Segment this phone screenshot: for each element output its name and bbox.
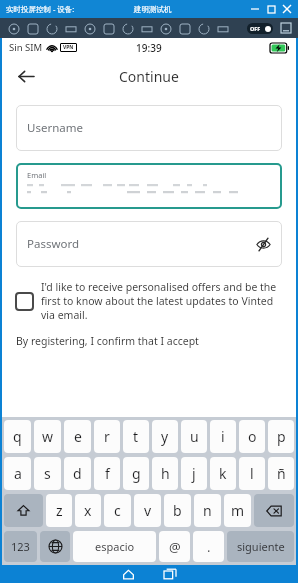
button[interactable]: Username: [16, 105, 282, 151]
button[interactable]: Tool 7: [118, 19, 137, 38]
button[interactable]: Tool 3: [42, 19, 61, 38]
button[interactable]: Minimize: [247, 1, 263, 17]
staticText: y: [161, 427, 169, 446]
button[interactable]: c: [104, 494, 131, 527]
staticText: v: [144, 501, 152, 520]
button[interactable]: v: [134, 494, 161, 527]
button[interactable]: Back: [8, 59, 42, 93]
button[interactable]: o: [239, 420, 265, 453]
button[interactable]: Tool 8: [137, 19, 156, 38]
button[interactable]: b: [164, 494, 191, 527]
button[interactable]: a: [4, 457, 31, 490]
staticText: 建明测试机: [134, 5, 172, 14]
button[interactable]: Maximize: [263, 1, 279, 17]
staticText: z: [56, 501, 63, 520]
button[interactable]: 123: [4, 531, 37, 562]
button[interactable]: I'd like to receive personalised offers …: [15, 280, 282, 322]
button[interactable]: s: [34, 457, 61, 490]
button[interactable]: .: [193, 531, 224, 562]
staticText: j: [192, 464, 196, 483]
button[interactable]: Password: [16, 221, 282, 267]
button[interactable]: p: [268, 420, 294, 453]
staticText: 19:39: [136, 41, 162, 55]
staticText: o: [248, 427, 257, 446]
button[interactable]: siguiente: [227, 531, 294, 562]
staticText: Username: [27, 120, 83, 136]
button[interactable]: @: [159, 531, 190, 562]
button[interactable]: q: [4, 420, 31, 453]
staticText: u: [190, 427, 199, 446]
staticText: h: [161, 464, 170, 483]
button[interactable]: ñ: [268, 457, 294, 490]
button[interactable]: Email: [16, 163, 282, 209]
staticText: l: [250, 464, 254, 483]
staticText: espacio: [95, 539, 135, 554]
button[interactable]: u: [181, 420, 207, 453]
staticText: m: [231, 501, 245, 520]
button[interactable]: Change language: [40, 531, 70, 562]
button[interactable]: g: [123, 457, 149, 490]
staticText: siguiente: [237, 539, 285, 554]
button[interactable]: i: [210, 420, 236, 453]
staticText: @: [169, 538, 181, 556]
staticText: Sin SIM: [9, 41, 43, 54]
staticText: e: [74, 427, 82, 446]
staticText: b: [173, 501, 182, 520]
button[interactable]: Tool 11: [194, 19, 213, 38]
button[interactable]: Tool 4: [61, 19, 80, 38]
staticText: a: [14, 464, 22, 483]
button[interactable]: e: [64, 420, 91, 453]
staticText: .: [207, 538, 211, 556]
button[interactable]: Tool 5: [80, 19, 99, 38]
staticText: OFF: [250, 25, 261, 32]
button[interactable]: Shift: [4, 494, 43, 527]
button[interactable]: Backspace: [254, 494, 294, 527]
button[interactable]: t: [123, 420, 149, 453]
button[interactable]: Toggle off: [247, 23, 273, 34]
staticText: w: [42, 427, 54, 446]
staticText: t: [133, 427, 139, 446]
button[interactable]: r: [94, 420, 120, 453]
button[interactable]: d: [64, 457, 91, 490]
button[interactable]: Show password: [250, 231, 276, 257]
staticText: 123: [11, 539, 30, 554]
staticText: g: [132, 464, 141, 483]
staticText: n: [203, 501, 212, 520]
button[interactable]: y: [152, 420, 178, 453]
staticText: I'd like to receive personalised offers …: [41, 280, 282, 322]
button[interactable]: n: [194, 494, 221, 527]
button[interactable]: w: [34, 420, 61, 453]
button[interactable]: l: [239, 457, 265, 490]
button[interactable]: Tool 1: [4, 19, 23, 38]
button[interactable]: Tool 2: [23, 19, 42, 38]
button[interactable]: Tool 10: [175, 19, 194, 38]
button[interactable]: x: [75, 494, 101, 527]
staticText: Password: [27, 236, 80, 252]
staticText: ñ: [277, 464, 286, 483]
button[interactable]: Tool 6: [99, 19, 118, 38]
staticText: Email: [27, 170, 47, 180]
button[interactable]: f: [94, 457, 120, 490]
staticText: p: [277, 427, 286, 446]
button[interactable]: Close: [279, 1, 295, 17]
button[interactable]: h: [152, 457, 178, 490]
staticText: k: [219, 464, 227, 483]
button[interactable]: Screen: [279, 21, 293, 35]
button[interactable]: Recents: [162, 566, 178, 582]
staticText: f: [105, 464, 110, 483]
staticText: x: [84, 501, 92, 520]
button[interactable]: z: [46, 494, 72, 527]
staticText: By registering, I confirm that I accept: [16, 334, 199, 348]
button[interactable]: k: [210, 457, 236, 490]
button[interactable]: j: [181, 457, 207, 490]
button[interactable]: Tool 12: [213, 19, 232, 38]
button[interactable]: espacio: [73, 531, 156, 562]
button[interactable]: m: [224, 494, 251, 527]
staticText: r: [104, 427, 110, 446]
staticText: VPN: [63, 44, 74, 51]
staticText: i: [221, 427, 225, 446]
button[interactable]: Home: [120, 566, 136, 582]
staticText: 实时投屏控制 - 设备:: [6, 4, 75, 14]
button[interactable]: Tool 9: [156, 19, 175, 38]
staticText: q: [13, 427, 22, 446]
